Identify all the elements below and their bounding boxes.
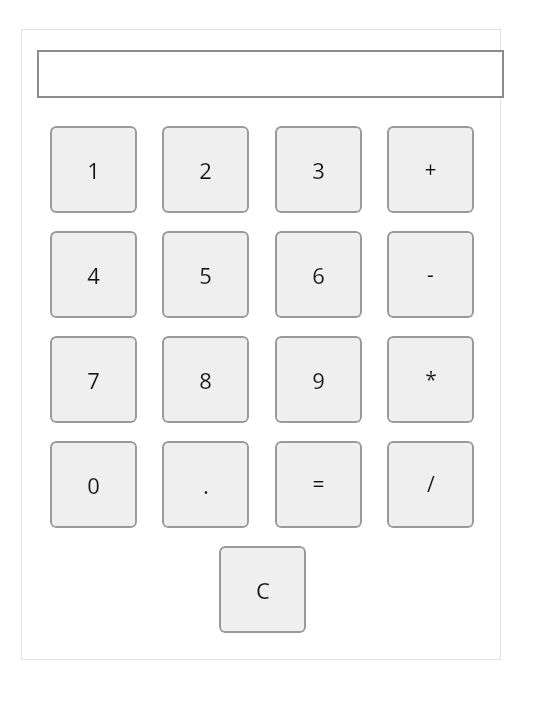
- staticText: 2: [199, 155, 212, 185]
- staticText: 7: [87, 365, 100, 395]
- staticText: .: [203, 470, 209, 500]
- staticText: =: [312, 470, 325, 499]
- button[interactable]: -: [387, 231, 474, 318]
- staticText: 6: [312, 260, 325, 290]
- button[interactable]: 4: [50, 231, 137, 318]
- button[interactable]: =: [275, 441, 362, 528]
- button[interactable]: +: [387, 126, 474, 213]
- button[interactable]: 1: [50, 126, 137, 213]
- button[interactable]: 7: [50, 336, 137, 423]
- button[interactable]: /: [387, 441, 474, 528]
- button[interactable]: 0: [50, 441, 137, 528]
- staticText: 0: [87, 470, 100, 500]
- staticText: /: [427, 470, 435, 499]
- button[interactable]: 2: [162, 126, 249, 213]
- staticText: C: [256, 575, 270, 605]
- button[interactable]: *: [387, 336, 474, 423]
- staticText: 3: [312, 155, 325, 185]
- staticText: *: [425, 365, 437, 394]
- staticText: 5: [199, 260, 212, 290]
- staticText: 8: [199, 365, 212, 395]
- staticText: +: [424, 155, 437, 184]
- button[interactable]: .: [162, 441, 249, 528]
- staticText: 4: [87, 260, 100, 290]
- button[interactable]: 6: [275, 231, 362, 318]
- staticText: -: [427, 260, 434, 289]
- button[interactable]: 8: [162, 336, 249, 423]
- button[interactable]: 3: [275, 126, 362, 213]
- button[interactable]: [37, 50, 504, 98]
- button[interactable]: 5: [162, 231, 249, 318]
- staticText: 1: [87, 155, 100, 185]
- button[interactable]: 9: [275, 336, 362, 423]
- staticText: 9: [312, 365, 325, 395]
- button[interactable]: C: [219, 546, 306, 633]
